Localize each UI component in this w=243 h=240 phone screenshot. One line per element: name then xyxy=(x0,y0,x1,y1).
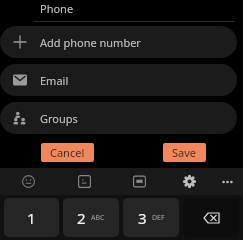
staticText: Phone xyxy=(40,1,74,16)
staticText: ABC xyxy=(91,213,105,223)
staticText: Cancel xyxy=(50,145,85,160)
staticText: 1 xyxy=(27,208,36,228)
button[interactable]: 2 xyxy=(63,198,119,237)
button[interactable]: More options xyxy=(211,168,243,195)
staticText: 3 xyxy=(138,208,147,228)
button[interactable]: 3 xyxy=(123,198,179,237)
button[interactable]: Add phone number xyxy=(0,26,237,58)
button[interactable]: Settings xyxy=(167,168,211,195)
other: Groups xyxy=(13,111,27,125)
other: Email xyxy=(13,73,27,87)
button[interactable]: 1 xyxy=(4,198,59,237)
button[interactable]: GIF xyxy=(112,168,167,195)
staticText: 2 xyxy=(77,208,86,228)
button[interactable]: Email xyxy=(0,64,237,96)
button[interactable]: Stickers xyxy=(56,168,112,195)
staticText: DEF xyxy=(152,213,165,223)
button[interactable]: Cancel xyxy=(41,143,94,162)
staticText: Groups xyxy=(40,111,78,126)
other: Add phone number xyxy=(13,35,27,49)
button[interactable]: Backspace xyxy=(183,198,239,237)
staticText: Save xyxy=(172,145,197,160)
staticText: Email xyxy=(40,73,69,88)
staticText: Add phone number xyxy=(40,35,141,50)
button[interactable]: Save xyxy=(163,143,206,162)
button[interactable]: Groups xyxy=(0,102,237,134)
button[interactable]: Emoji xyxy=(0,168,56,195)
